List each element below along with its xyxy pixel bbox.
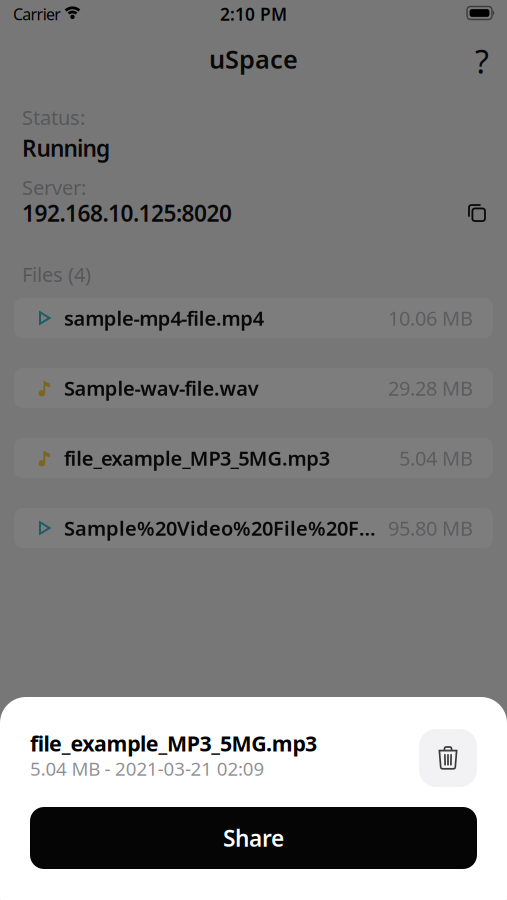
staticText: sample-mp4-file.mp4: [64, 305, 264, 331]
button[interactable]: Sample%20Video%20File%20For%2...: [14, 508, 493, 548]
staticText: Sample-wav-file.wav: [64, 375, 259, 401]
staticText: Files (4): [22, 261, 91, 288]
staticText: file_example_MP3_5MG.mp3: [30, 729, 317, 757]
staticText: Carrier: [13, 3, 61, 25]
staticText: Status:: [22, 104, 85, 131]
staticText: ?: [475, 40, 489, 82]
button[interactable]: Sample-wav-file.wav: [14, 368, 493, 408]
button[interactable]: Help: [475, 40, 489, 82]
staticText: 29.28 MB: [388, 375, 473, 401]
staticText: Sample%20Video%20File%20For%2...: [64, 515, 380, 541]
staticText: 5.04 MB: [399, 445, 473, 471]
staticText: uSpace: [209, 42, 298, 76]
staticText: 192.168.10.125:8020: [22, 198, 232, 228]
button[interactable]: Share: [30, 807, 477, 869]
staticText: Share: [223, 823, 284, 853]
staticText: 10.06 MB: [388, 305, 473, 331]
staticText: file_example_MP3_5MG.mp3: [64, 445, 330, 471]
button[interactable]: file_example_MP3_5MG.mp3: [14, 438, 493, 478]
staticText: 95.80 MB: [388, 515, 473, 541]
button[interactable]: Delete file: [419, 729, 477, 787]
staticText: Server:: [22, 174, 86, 201]
staticText: 2:10 PM: [220, 2, 287, 25]
staticText: 5.04 MB - 2021-03-21 02:09: [30, 756, 264, 781]
staticText: Running: [22, 133, 110, 163]
button[interactable]: Copy server address: [468, 204, 486, 222]
button[interactable]: sample-mp4-file.mp4: [14, 298, 493, 338]
